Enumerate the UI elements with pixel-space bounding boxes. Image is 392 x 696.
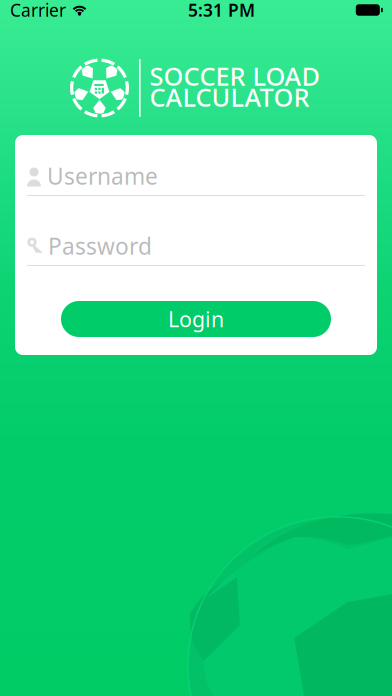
staticText: 5:31 PM xyxy=(188,0,255,21)
button[interactable]: Login xyxy=(61,301,331,337)
staticText: SOCCER LOAD xyxy=(150,59,321,93)
staticText: Carrier xyxy=(10,0,66,21)
staticText: CALCULATOR xyxy=(150,80,310,114)
staticText: Username xyxy=(47,161,158,191)
staticText: Password xyxy=(48,231,152,261)
staticText: Login xyxy=(168,305,224,333)
